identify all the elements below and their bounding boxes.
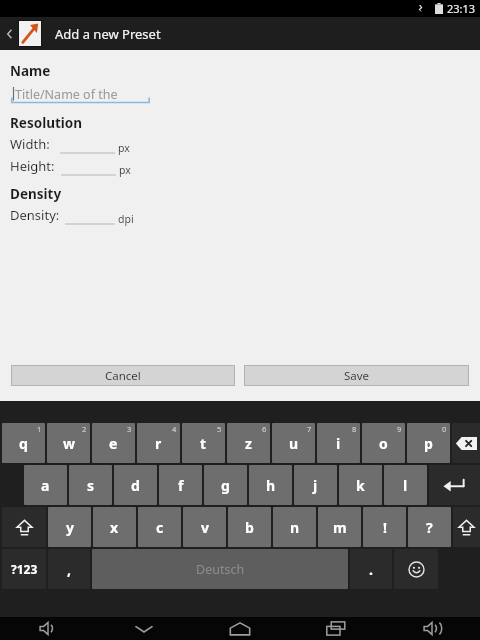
button[interactable]: f (159, 465, 202, 505)
button[interactable]: Volume up (384, 617, 480, 640)
staticText: ! (383, 518, 387, 537)
staticText: 7 (307, 424, 312, 434)
staticText: r (155, 434, 162, 453)
button[interactable]: t (182, 423, 225, 463)
staticText: v (201, 518, 209, 537)
staticText: Cancel (105, 368, 141, 384)
button[interactable]: d (114, 465, 157, 505)
button[interactable]: v (183, 507, 226, 547)
button[interactable]: j (294, 465, 337, 505)
button[interactable]: ? (408, 507, 451, 547)
button[interactable]: w (47, 423, 90, 463)
staticText: w (63, 434, 75, 453)
button[interactable]: Home (192, 617, 288, 640)
button[interactable]: m (318, 507, 361, 547)
staticText: 2 (82, 424, 87, 434)
staticText: c (156, 518, 164, 537)
staticText: p (424, 434, 433, 453)
staticText: ?123 (11, 561, 38, 577)
staticText: d (131, 476, 140, 495)
button[interactable]: y (48, 507, 91, 547)
staticText: i (336, 434, 341, 453)
staticText: q (19, 434, 28, 453)
staticText: Save (344, 368, 370, 384)
button[interactable]: o (362, 423, 405, 463)
staticText: 9 (397, 424, 402, 434)
staticText: . (369, 560, 373, 579)
other: Vibrate off (415, 3, 426, 14)
button[interactable]: Enter (429, 465, 480, 505)
staticText: o (379, 434, 388, 453)
staticText: Density: (10, 206, 60, 224)
staticText: 4 (172, 424, 177, 434)
button[interactable]: q (2, 423, 45, 463)
button[interactable] (61, 162, 116, 176)
button[interactable]: , (48, 549, 90, 589)
button[interactable]: k (339, 465, 382, 505)
button[interactable]: Shift (2, 507, 46, 547)
staticText: g (221, 476, 230, 495)
button[interactable]: Save (244, 365, 469, 386)
staticText: Title/Name of the Preset (15, 86, 150, 104)
staticText: 6 (262, 424, 267, 434)
button[interactable]: Shift (453, 507, 480, 547)
staticText: , (67, 560, 71, 579)
staticText: Density (10, 185, 62, 203)
button[interactable]: ! (363, 507, 406, 547)
staticText: 1 (37, 424, 42, 434)
button[interactable]: l (384, 465, 427, 505)
button[interactable]: a (24, 465, 67, 505)
button[interactable]: Recent apps (288, 617, 384, 640)
button[interactable]: b (228, 507, 271, 547)
button[interactable]: g (204, 465, 247, 505)
button[interactable]: Backspace (452, 423, 480, 463)
staticText: Width: (10, 135, 50, 153)
staticText: Resolution (10, 114, 83, 132)
staticText: Add a new Preset (55, 25, 161, 43)
staticText: px (118, 141, 130, 155)
button[interactable] (65, 211, 115, 225)
button[interactable]: Back (0, 17, 480, 50)
staticText: 8 (352, 424, 357, 434)
button[interactable]: Volume down (0, 617, 96, 640)
other: Back (5, 26, 14, 42)
staticText: u (289, 434, 299, 453)
staticText: 0 (442, 424, 447, 434)
button[interactable]: Emoji (394, 549, 438, 589)
button[interactable]: r (137, 423, 180, 463)
button[interactable]: Cancel (11, 365, 235, 386)
staticText: x (110, 518, 119, 537)
staticText: ? (426, 518, 433, 537)
button[interactable]: h (249, 465, 292, 505)
staticText: h (266, 476, 276, 495)
staticText: 3 (127, 424, 132, 434)
button[interactable]: z (227, 423, 270, 463)
staticText: e (109, 434, 118, 453)
button[interactable] (60, 140, 115, 154)
button[interactable]: u (272, 423, 315, 463)
button[interactable]: n (273, 507, 316, 547)
staticText: b (245, 518, 254, 537)
button[interactable]: ?123 (2, 549, 46, 589)
button[interactable]: Deutsch (92, 549, 348, 589)
staticText: l (403, 476, 408, 495)
button[interactable]: e (92, 423, 135, 463)
staticText: px (119, 163, 131, 177)
button[interactable]: Title/Name of the Preset (11, 85, 150, 104)
staticText: a (41, 476, 50, 495)
button[interactable]: x (93, 507, 136, 547)
button[interactable]: c (138, 507, 181, 547)
staticText: 5 (217, 424, 222, 434)
staticText: j (313, 476, 318, 495)
staticText: t (200, 434, 207, 453)
button[interactable]: s (69, 465, 112, 505)
staticText: n (290, 518, 300, 537)
staticText: 23:13 (447, 1, 476, 16)
button[interactable]: Hide keyboard (96, 617, 192, 640)
button[interactable]: p (407, 423, 450, 463)
button[interactable]: i (317, 423, 360, 463)
staticText: m (333, 518, 347, 537)
button[interactable]: . (350, 549, 392, 589)
staticText: k (356, 476, 365, 495)
staticText: Height: (10, 157, 55, 175)
